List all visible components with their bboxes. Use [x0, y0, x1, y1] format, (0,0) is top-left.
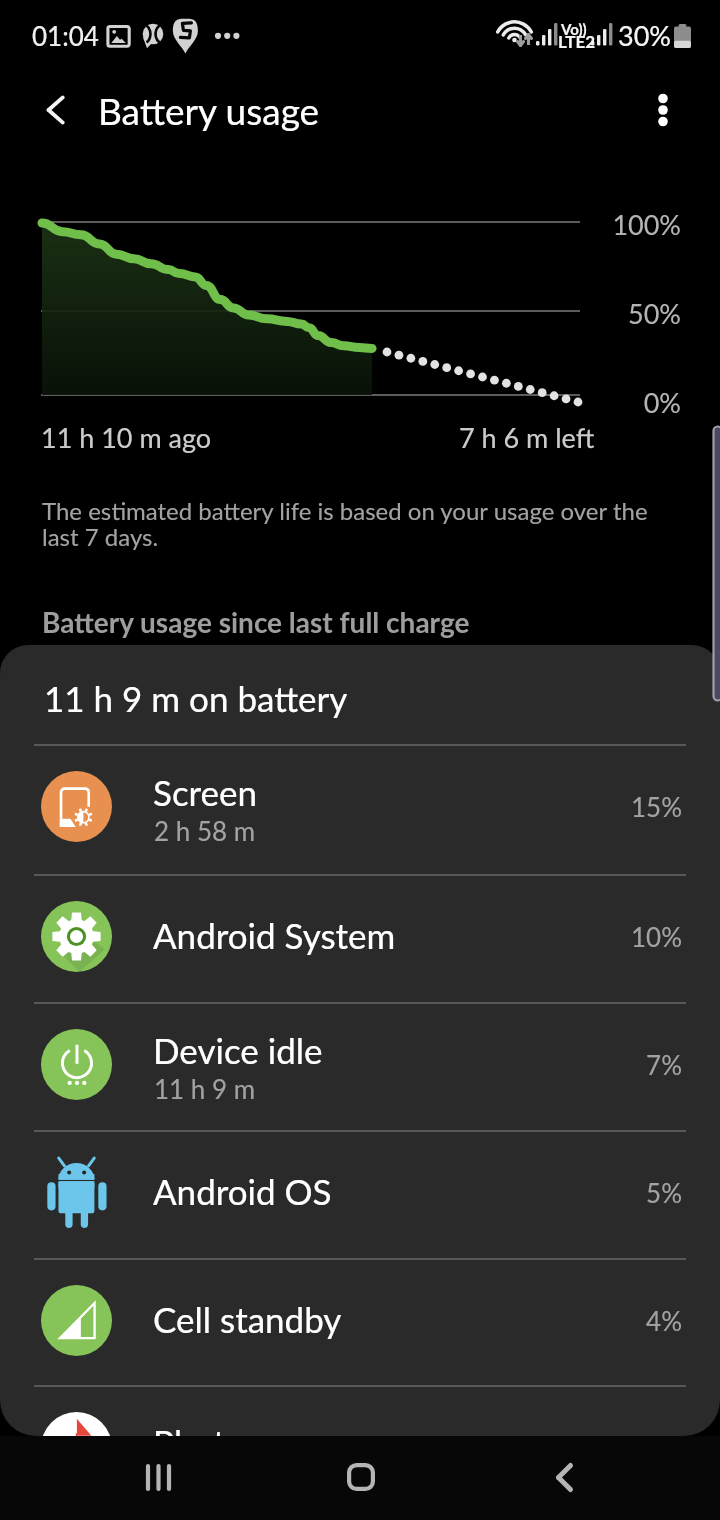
staticText: 01:04: [32, 20, 99, 51]
staticText: 0%: [560, 386, 681, 418]
button[interactable]: Device idle: [0, 1002, 720, 1131]
staticText: Photos: [153, 1421, 261, 1436]
button[interactable]: Screen: [0, 744, 720, 873]
button[interactable]: Recents: [120, 1437, 200, 1517]
staticText: 7%: [545, 1049, 682, 1080]
staticText: 30%: [618, 19, 671, 51]
staticText: 7 h 6 m left: [459, 421, 595, 453]
staticText: 50%: [560, 297, 681, 329]
staticText: 15%: [545, 791, 682, 822]
staticText: 2 h 58 m: [154, 815, 256, 846]
staticText: Battery usage: [98, 88, 320, 132]
staticText: 100%: [560, 208, 681, 240]
staticText: Device idle: [153, 1029, 323, 1071]
staticText: Android System: [153, 914, 396, 956]
staticText: 10%: [545, 921, 682, 952]
button[interactable]: Cell standby: [0, 1258, 720, 1387]
staticText: 11 h 10 m ago: [41, 421, 212, 453]
staticText: Cell standby: [153, 1298, 342, 1340]
staticText: 4%: [545, 1305, 682, 1336]
button[interactable]: Android System: [0, 874, 720, 1003]
staticText: LTE2: [558, 31, 596, 51]
staticText: Vo)): [561, 20, 587, 38]
button[interactable]: Android OS: [0, 1130, 720, 1259]
staticText: 5%: [545, 1177, 682, 1208]
staticText: Android OS: [153, 1170, 332, 1212]
staticText: 11 h 9 m on battery: [44, 677, 348, 719]
staticText: Battery usage since last full charge: [42, 605, 470, 639]
staticText: 11 h 9 m: [154, 1073, 256, 1104]
button[interactable]: Back: [27, 81, 85, 139]
staticText: Screen: [153, 771, 258, 813]
button[interactable]: Home: [321, 1437, 401, 1517]
button[interactable]: More options: [634, 81, 692, 139]
button[interactable]: Photos: [0, 1385, 720, 1436]
staticText: The estimated battery life is based on y…: [42, 496, 648, 525]
button[interactable]: Back: [524, 1437, 604, 1517]
staticText: last 7 days.: [42, 522, 159, 551]
